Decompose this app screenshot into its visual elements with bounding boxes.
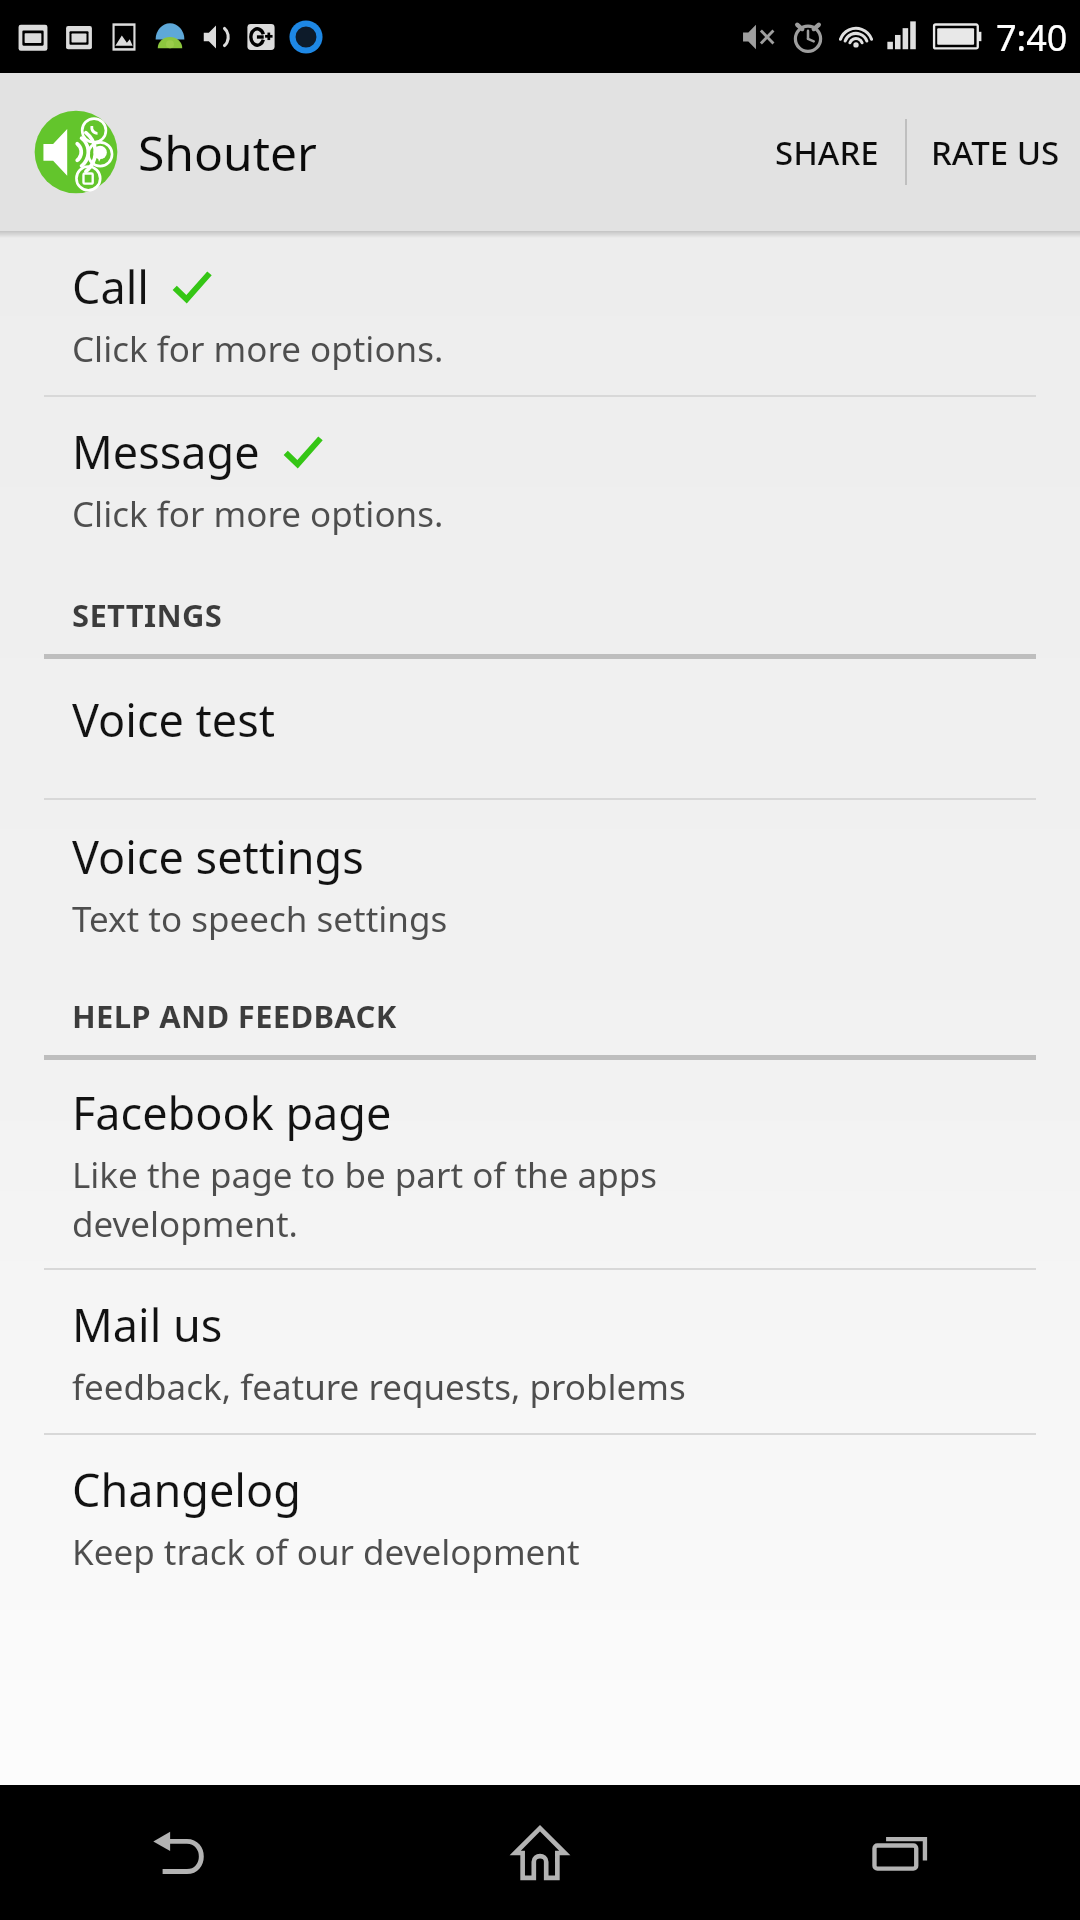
staticText: Keep track of our development xyxy=(72,1528,580,1576)
staticText: Mail us xyxy=(72,1294,223,1355)
staticText: Shouter xyxy=(138,120,317,185)
button[interactable]: Voice settings xyxy=(0,800,1080,969)
button[interactable]: Changelog xyxy=(0,1435,1080,1598)
button[interactable]: Call xyxy=(0,238,1080,395)
staticText: Message xyxy=(72,421,260,482)
button[interactable]: Mail us xyxy=(0,1270,1080,1433)
staticText: RATE US xyxy=(931,130,1060,175)
staticText: Click for more options. xyxy=(72,490,444,538)
button[interactable]: Back xyxy=(0,1785,360,1920)
staticText: SETTINGS xyxy=(72,594,223,636)
staticText: feedback, feature requests, problems xyxy=(72,1363,686,1411)
staticText: 7:40 xyxy=(996,13,1068,62)
staticText: Changelog xyxy=(72,1459,301,1520)
staticText: Text to speech settings xyxy=(72,895,448,943)
button[interactable]: RATE US xyxy=(907,73,1080,231)
button[interactable]: SHARE xyxy=(749,73,905,231)
staticText: Facebook page xyxy=(72,1082,392,1143)
staticText: Like the page to be part of the apps dev… xyxy=(72,1151,658,1248)
button[interactable]: Message xyxy=(0,397,1080,564)
staticText: Voice test xyxy=(72,689,276,750)
staticText: Click for more options. xyxy=(72,325,444,373)
button[interactable]: Recents xyxy=(720,1785,1080,1920)
staticText: Call xyxy=(72,256,149,317)
button[interactable]: Home xyxy=(360,1785,720,1920)
staticText: HELP AND FEEDBACK xyxy=(72,995,397,1037)
button[interactable]: Voice test xyxy=(0,659,1080,798)
staticText: Voice settings xyxy=(72,826,364,887)
button[interactable]: Facebook page xyxy=(0,1060,1080,1268)
staticText: SHARE xyxy=(775,130,879,175)
